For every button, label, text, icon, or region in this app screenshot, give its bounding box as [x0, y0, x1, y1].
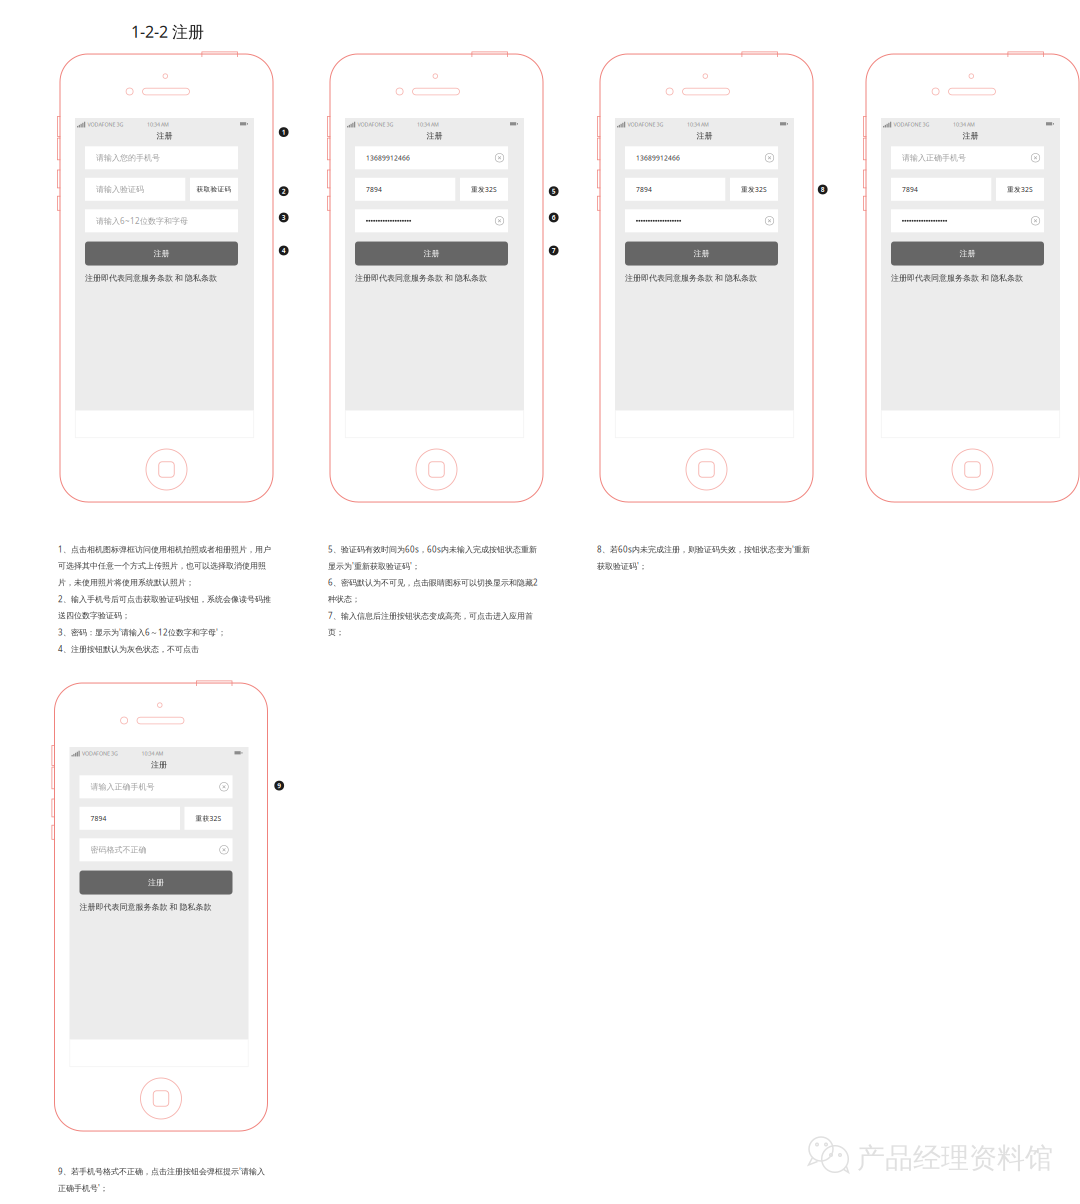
- staticText: 注册即代表同意服务条款 和 隐私条款: [85, 273, 217, 283]
- staticText: 注册: [423, 249, 439, 258]
- staticText: 1、点击相机图标弹框访问使用相机拍照或者相册照片，用户: [58, 544, 271, 555]
- staticText: 8、若60s内未完成注册，则验证码失效，按钮状态变为'重新: [597, 544, 810, 555]
- staticText: 4、注册按钮默认为灰色状态，不可点击: [58, 644, 199, 654]
- staticText: 7894: [90, 814, 106, 823]
- button[interactable]: Home: [686, 449, 727, 490]
- staticText: VODAFONE 3G: [894, 121, 930, 128]
- button[interactable]: Home: [416, 449, 457, 490]
- button[interactable]: Home: [146, 449, 187, 490]
- button[interactable]: 13689912466: [625, 146, 778, 169]
- staticText: 10:34 AM: [141, 750, 163, 757]
- button[interactable]: 注册: [625, 241, 778, 265]
- button[interactable]: Home: [140, 1078, 181, 1119]
- staticText: 注册: [962, 131, 978, 141]
- button[interactable]: 注册: [355, 241, 508, 265]
- staticText: 注册: [693, 249, 709, 258]
- button[interactable]: Clear text: [495, 216, 508, 225]
- button[interactable]: Clear text: [1031, 216, 1044, 225]
- staticText: 10:34 AM: [147, 121, 169, 128]
- staticText: 8: [821, 185, 825, 194]
- staticText: 7、输入信息后注册按钮状态变成高亮，可点击进入应用首: [328, 610, 533, 621]
- button[interactable]: 注册: [79, 870, 232, 894]
- button[interactable]: Clear text: [220, 845, 232, 854]
- button[interactable]: Password: [891, 209, 1044, 232]
- button[interactable]: 注册: [85, 241, 238, 265]
- button[interactable]: 请输入验证码: [85, 178, 185, 201]
- button[interactable]: 获取验证码: [190, 178, 238, 201]
- staticText: 送四位数字验证码；: [58, 611, 130, 621]
- button[interactable]: 请输入正确手机号: [891, 146, 1044, 169]
- staticText: 13689912466: [366, 153, 410, 162]
- staticText: 获取验证码'；: [597, 561, 647, 571]
- staticText: 正确手机号'；: [58, 1183, 108, 1193]
- staticText: 4: [282, 246, 286, 255]
- button[interactable]: 7894: [625, 178, 725, 201]
- button[interactable]: 7894: [355, 178, 455, 201]
- button[interactable]: Home: [952, 449, 993, 490]
- staticText: 注册: [156, 131, 172, 141]
- button[interactable]: Clear text: [1031, 153, 1044, 162]
- staticText: 显示为'重新获取验证码'；: [328, 561, 420, 571]
- staticText: 注册: [148, 878, 164, 887]
- staticText: 9: [277, 781, 281, 790]
- button[interactable]: Clear text: [765, 216, 778, 225]
- staticText: 重发32S: [471, 185, 497, 194]
- staticText: 请输入正确手机号: [902, 153, 966, 163]
- staticText: 13689912466: [636, 153, 680, 162]
- staticText: 注册: [151, 760, 167, 770]
- staticText: VODAFONE 3G: [82, 750, 118, 757]
- staticText: 5: [552, 187, 556, 196]
- button[interactable]: Clear text: [495, 153, 508, 162]
- button[interactable]: 重发32S: [730, 178, 778, 201]
- button[interactable]: 13689912466: [355, 146, 508, 169]
- button[interactable]: 重发32S: [460, 178, 508, 201]
- button[interactable]: 注册即代表同意服务条款 和 隐私条款: [625, 273, 757, 283]
- button[interactable]: Clear text: [765, 153, 778, 162]
- staticText: 种状态；: [328, 594, 360, 604]
- staticText: 10:34 AM: [687, 121, 709, 128]
- staticText: 可选择其中任意一个方式上传照片，也可以选择取消使用照: [58, 561, 266, 571]
- button[interactable]: 重发32S: [996, 178, 1044, 201]
- staticText: 注册: [426, 131, 442, 141]
- staticText: 重发32S: [741, 185, 767, 194]
- staticText: 1-2-2 注册: [131, 21, 204, 42]
- staticText: 请输入您的手机号: [96, 153, 160, 163]
- button[interactable]: Clear text: [220, 782, 232, 791]
- staticText: 3、密码：显示为'请输入6～12位数字和字母'；: [58, 627, 226, 638]
- button[interactable]: Password: [355, 209, 508, 232]
- staticText: VODAFONE 3G: [358, 121, 394, 128]
- button[interactable]: Password: [625, 209, 778, 232]
- button[interactable]: 重获32S: [184, 807, 232, 830]
- staticText: 请输入正确手机号: [90, 782, 154, 792]
- staticText: 7894: [366, 185, 382, 194]
- staticText: 6: [552, 213, 556, 222]
- button[interactable]: 注册即代表同意服务条款 和 隐私条款: [79, 902, 211, 912]
- button[interactable]: 注册即代表同意服务条款 和 隐私条款: [355, 273, 487, 283]
- staticText: VODAFONE 3G: [88, 121, 124, 128]
- staticText: 2: [282, 187, 286, 196]
- staticText: 注册即代表同意服务条款 和 隐私条款: [355, 273, 487, 283]
- staticText: 注册: [959, 249, 975, 258]
- button[interactable]: 注册即代表同意服务条款 和 隐私条款: [891, 273, 1023, 283]
- staticText: 注册: [153, 249, 169, 258]
- button[interactable]: 请输入您的手机号: [85, 146, 238, 169]
- staticText: 7894: [902, 185, 918, 194]
- staticText: 页；: [328, 627, 344, 637]
- button[interactable]: 请输入正确手机号: [79, 775, 232, 798]
- staticText: 10:34 AM: [953, 121, 975, 128]
- staticText: VODAFONE 3G: [628, 121, 664, 128]
- button[interactable]: 7894: [891, 178, 991, 201]
- button[interactable]: 密码格式不正确: [79, 838, 232, 861]
- staticText: 请输入6~12位数字和字母: [96, 215, 188, 226]
- staticText: 3: [282, 213, 286, 222]
- staticText: 密码格式不正确: [90, 845, 146, 855]
- staticText: 片，未使用照片将使用系统默认照片；: [58, 578, 194, 587]
- staticText: 7894: [636, 185, 652, 194]
- button[interactable]: 请输入6~12位数字和字母: [85, 209, 238, 232]
- button[interactable]: 7894: [79, 807, 180, 830]
- staticText: 2、输入手机号后可点击获取验证码按钮，系统会像读号码推: [58, 594, 271, 604]
- staticText: 1: [282, 128, 286, 137]
- button[interactable]: 注册: [891, 241, 1044, 265]
- staticText: 5、验证码有效时间为60s，60s内未输入完成按钮状态重新: [328, 544, 537, 555]
- button[interactable]: 注册即代表同意服务条款 和 隐私条款: [85, 273, 217, 283]
